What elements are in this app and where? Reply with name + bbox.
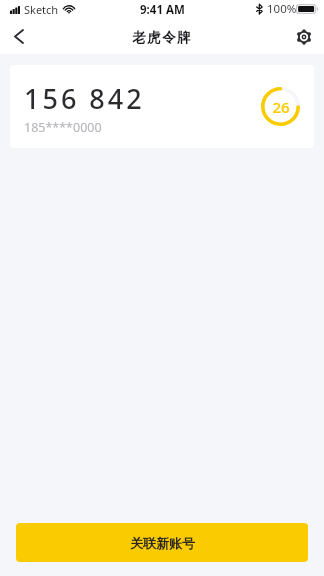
staticText: 26 <box>272 97 290 117</box>
button[interactable]: Settings <box>286 22 324 54</box>
staticText: 156 842 <box>24 80 145 117</box>
staticText: 9:41 AM <box>140 2 185 18</box>
staticText: 185****0000 <box>24 119 102 136</box>
staticText: 老虎令牌 <box>132 29 193 46</box>
staticText: Sketch <box>24 2 59 17</box>
staticText: 关联新账号 <box>130 535 195 551</box>
button[interactable]: 关联新账号 <box>16 523 308 562</box>
staticText: 100% <box>267 1 297 17</box>
button[interactable]: Back <box>0 22 38 54</box>
button[interactable]: 156 842 <box>10 65 314 148</box>
